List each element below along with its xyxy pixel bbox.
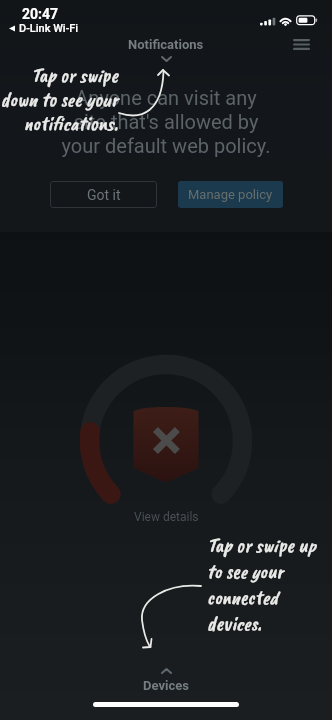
- button[interactable]: View details: [0, 508, 332, 526]
- staticText: Devices: [143, 678, 189, 693]
- button[interactable]: Got it: [50, 181, 157, 208]
- staticText: Notifications: [128, 37, 204, 52]
- staticText: D-Link Wi-Fi: [19, 22, 79, 35]
- staticText: Tap or swipe down to see your notificati…: [0, 63, 118, 136]
- staticText: View details: [134, 510, 199, 524]
- staticText: Tap or swipe up to see your connected de…: [207, 533, 332, 636]
- button[interactable]: Manage policy: [178, 181, 283, 208]
- button[interactable]: Devices: [0, 668, 332, 693]
- button[interactable]: Menu: [287, 30, 316, 58]
- staticText: 20:47: [22, 6, 59, 22]
- staticText: Anyone can visit any site that's allowed…: [59, 86, 273, 158]
- button[interactable]: Notifications: [0, 37, 332, 62]
- staticText: Manage policy: [188, 187, 273, 202]
- staticText: Got it: [87, 187, 121, 203]
